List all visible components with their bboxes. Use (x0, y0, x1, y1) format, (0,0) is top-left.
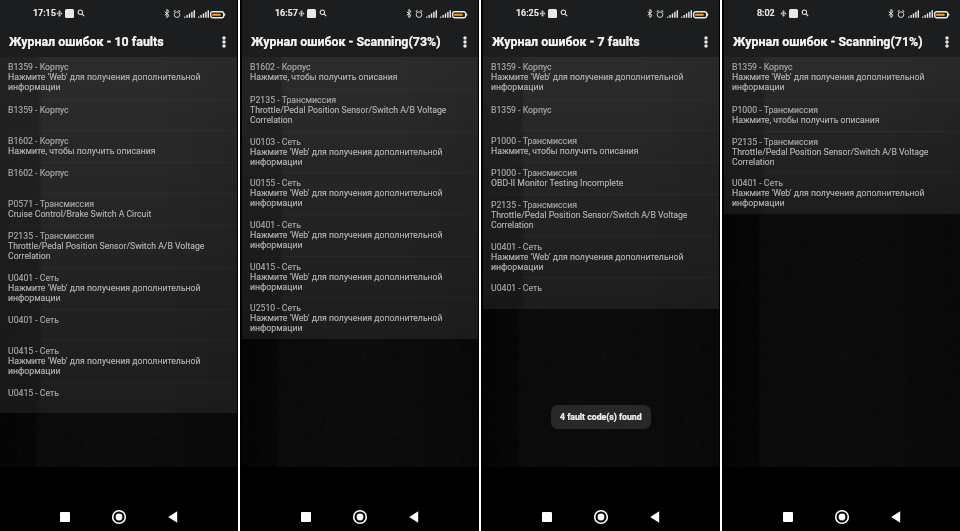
button[interactable]: U0401 - Сеть (0, 309, 237, 340)
staticText: Throttle/Pedal Position Sensor/Switch A/… (491, 210, 711, 230)
button[interactable]: U2510 - Сеть (242, 297, 478, 339)
staticText: B1359 - Корпус (8, 105, 69, 115)
button[interactable]: Back (641, 503, 669, 531)
staticText: Нажмите 'Web' для получения дополнительн… (8, 72, 229, 92)
button[interactable]: U0415 - Сеть (0, 382, 237, 413)
staticText: Журнал ошибок - 10 faults (9, 34, 164, 49)
button[interactable]: Home (346, 503, 374, 531)
button[interactable]: 4 fault code(s) found (551, 405, 651, 429)
staticText: B1602 - Корпус (8, 168, 69, 178)
staticText: Журнал ошибок - Scanning(73%) (251, 34, 441, 49)
staticText: U0401 - Сеть (491, 283, 542, 293)
button[interactable]: More options (452, 29, 478, 55)
staticText: Нажмите 'Web' для получения дополнительн… (250, 188, 470, 208)
staticText: 16:57 (275, 8, 298, 19)
button[interactable]: U0401 - Сеть (724, 172, 960, 214)
button[interactable]: More options (693, 29, 719, 55)
staticText: P1000 - Трансмиссия (491, 136, 577, 146)
staticText: U0415 - Сеть (8, 346, 59, 356)
staticText: 17:15 (33, 8, 56, 19)
staticText: Нажмите 'Web' для получения дополнительн… (491, 72, 711, 92)
button[interactable]: P2135 - Трансмиссия (0, 225, 237, 267)
button[interactable]: Home (587, 503, 615, 531)
staticText: OBD-II Monitor Testing Incomplete (491, 178, 624, 188)
staticText: Нажмите 'Web' для получения дополнительн… (732, 188, 952, 208)
staticText: Нажмите, чтобы получить описания (250, 72, 398, 82)
staticText: U2510 - Сеть (250, 303, 301, 313)
button[interactable]: Back (159, 503, 187, 531)
staticText: Throttle/Pedal Position Sensor/Switch A/… (250, 105, 470, 125)
button[interactable]: B1359 - Корпус (724, 57, 960, 99)
button[interactable]: B1602 - Корпус (0, 130, 237, 162)
staticText: P1000 - Трансмиссия (491, 168, 577, 178)
staticText: P2135 - Трансмиссия (491, 200, 577, 210)
button[interactable]: U0401 - Сеть (483, 236, 719, 277)
button[interactable]: B1359 - Корпус (0, 57, 237, 99)
staticText: P0571 - Трансмиссия (8, 199, 94, 209)
button[interactable]: U0415 - Сеть (0, 340, 237, 382)
staticText: Журнал ошибок - 7 faults (492, 34, 640, 49)
staticText: Нажмите, чтобы получить описания (8, 146, 156, 156)
button[interactable]: Back (400, 503, 428, 531)
button[interactable]: U0401 - Сеть (0, 267, 237, 309)
button[interactable]: P2135 - Трансмиссия (724, 131, 960, 172)
staticText: Нажмите 'Web' для получения дополнительн… (8, 356, 229, 376)
button[interactable]: P1000 - Трансмиссия (483, 130, 719, 162)
button[interactable]: P2135 - Трансмиссия (242, 89, 478, 131)
staticText: U0401 - Сеть (8, 273, 59, 283)
button[interactable]: B1602 - Корпус (242, 57, 478, 89)
button[interactable]: U0401 - Сеть (242, 214, 478, 256)
button[interactable]: P0571 - Трансмиссия (0, 193, 237, 225)
button[interactable]: U0103 - Сеть (242, 131, 478, 172)
button[interactable]: B1359 - Корпус (0, 99, 237, 130)
staticText: U0401 - Сеть (732, 178, 783, 188)
staticText: Нажмите 'Web' для получения дополнительн… (250, 272, 470, 292)
staticText: Нажмите 'Web' для получения дополнительн… (250, 230, 470, 250)
staticText: Нажмите 'Web' для получения дополнительн… (250, 147, 470, 167)
staticText: Нажмите 'Web' для получения дополнительн… (732, 72, 952, 92)
staticText: B1359 - Корпус (491, 62, 552, 72)
staticText: P2135 - Трансмиссия (250, 95, 336, 105)
staticText: P1000 - Трансмиссия (732, 105, 818, 115)
button[interactable]: Recents (774, 503, 802, 531)
staticText: B1359 - Корпус (732, 62, 793, 72)
button[interactable]: Home (105, 503, 133, 531)
button[interactable]: Recents (51, 503, 79, 531)
staticText: Нажмите 'Web' для получения дополнительн… (250, 313, 470, 333)
staticText: Нажмите, чтобы получить описания (732, 115, 880, 125)
button[interactable]: Home (828, 503, 856, 531)
staticText: Cruise Control/Brake Switch A Circuit (8, 209, 152, 219)
staticText: 8:02 (757, 8, 775, 19)
staticText: Throttle/Pedal Position Sensor/Switch A/… (8, 241, 229, 261)
staticText: 4 fault code(s) found (560, 412, 642, 422)
staticText: Нажмите 'Web' для получения дополнительн… (8, 283, 229, 303)
button[interactable]: P1000 - Трансмиссия (483, 162, 719, 194)
button[interactable]: U0415 - Сеть (242, 256, 478, 297)
staticText: U0155 - Сеть (250, 178, 301, 188)
button[interactable]: Back (882, 503, 910, 531)
button[interactable]: P1000 - Трансмиссия (724, 99, 960, 131)
staticText: U0401 - Сеть (8, 315, 59, 325)
button[interactable]: B1359 - Корпус (483, 57, 719, 99)
staticText: P2135 - Трансмиссия (732, 137, 818, 147)
button[interactable]: More options (211, 29, 237, 55)
button[interactable]: Recents (292, 503, 320, 531)
button[interactable]: U0401 - Сеть (483, 277, 719, 309)
staticText: U0415 - Сеть (250, 262, 301, 272)
button[interactable]: Recents (533, 503, 561, 531)
staticText: B1359 - Корпус (491, 105, 552, 115)
button[interactable]: More options (934, 29, 960, 55)
button[interactable]: B1602 - Корпус (0, 162, 237, 193)
staticText: U0103 - Сеть (250, 137, 301, 147)
staticText: U0415 - Сеть (8, 388, 59, 398)
button[interactable]: U0155 - Сеть (242, 172, 478, 214)
staticText: Нажмите 'Web' для получения дополнительн… (491, 252, 711, 272)
staticText: U0401 - Сеть (491, 242, 542, 252)
button[interactable]: B1359 - Корпус (483, 99, 719, 130)
staticText: P2135 - Трансмиссия (8, 231, 94, 241)
staticText: B1602 - Корпус (8, 136, 69, 146)
button[interactable]: P2135 - Трансмиссия (483, 194, 719, 236)
staticText: B1359 - Корпус (8, 62, 69, 72)
staticText: Журнал ошибок - Scanning(71%) (733, 34, 923, 49)
staticText: 16:25 (516, 8, 539, 19)
